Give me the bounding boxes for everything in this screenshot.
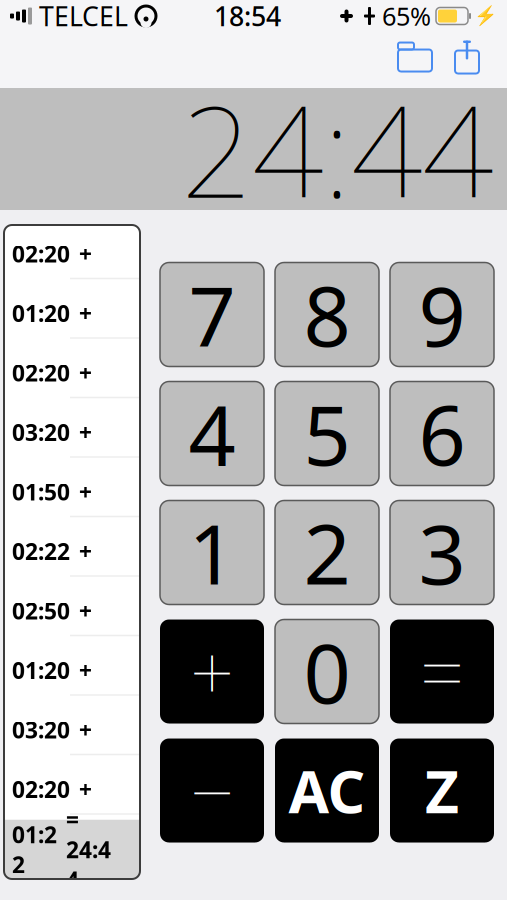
button[interactable]: 02:22 xyxy=(4,522,140,582)
button[interactable]: Z xyxy=(390,738,494,842)
button[interactable]: 0 xyxy=(275,619,379,723)
staticText: 03:20 xyxy=(12,417,70,447)
staticText: + xyxy=(79,596,92,626)
staticText: 03:20 xyxy=(12,715,70,745)
staticText: + xyxy=(79,536,92,566)
staticText: 01:20 xyxy=(12,655,70,685)
button[interactable]: 1 xyxy=(160,500,264,604)
staticText: AC xyxy=(288,751,365,829)
staticText: 24:44 xyxy=(181,66,493,232)
staticText: 02:20 xyxy=(12,239,70,269)
button[interactable]: − xyxy=(160,738,264,842)
staticText: 01:20 xyxy=(12,298,70,328)
staticText: 02:22 xyxy=(12,536,70,566)
button[interactable]: + xyxy=(160,619,264,723)
staticText: + xyxy=(79,358,92,388)
staticText: TELCEL xyxy=(39,0,128,34)
button[interactable]: 02:20 xyxy=(4,344,140,403)
button[interactable]: 2 xyxy=(275,500,379,604)
staticText: 65% xyxy=(382,0,431,33)
staticText: = xyxy=(420,620,464,723)
button[interactable]: 4 xyxy=(160,381,264,485)
staticText: − xyxy=(190,739,234,842)
button[interactable]: 01:22 xyxy=(4,820,140,879)
staticText: + xyxy=(79,239,92,269)
staticText: + xyxy=(79,774,92,804)
staticText: + xyxy=(79,715,92,745)
staticText: 3 xyxy=(418,498,465,607)
staticText: 0 xyxy=(303,617,350,726)
staticText: + xyxy=(79,298,92,328)
staticText: 6 xyxy=(418,379,465,488)
staticText: + xyxy=(79,655,92,685)
staticText: Z xyxy=(425,751,459,829)
button[interactable]: 03:20 xyxy=(4,403,140,463)
button[interactable]: 03:20 xyxy=(4,701,140,760)
button[interactable]: 02:50 xyxy=(4,582,140,641)
button[interactable]: 01:50 xyxy=(4,463,140,522)
staticText: 02:20 xyxy=(12,358,70,388)
button[interactable]: 3 xyxy=(390,500,494,604)
button[interactable]: 8 xyxy=(275,262,379,366)
button[interactable]: AC xyxy=(275,738,379,842)
button[interactable]: Open saved sessions xyxy=(389,32,441,82)
staticText: 5 xyxy=(303,379,350,488)
staticText: 8 xyxy=(303,260,350,369)
staticText: 01:22 xyxy=(12,819,57,880)
staticText: 7 xyxy=(188,260,235,369)
staticText: 02:50 xyxy=(12,596,70,626)
staticText: 18:54 xyxy=(214,0,281,34)
staticText: ⚡ xyxy=(474,5,497,27)
button[interactable]: 9 xyxy=(390,262,494,366)
staticText: 4 xyxy=(188,379,235,488)
staticText: = 24:44 xyxy=(66,804,111,895)
button[interactable]: 02:20 xyxy=(4,225,140,284)
button[interactable]: 01:20 xyxy=(4,284,140,344)
staticText: + xyxy=(79,417,92,447)
button[interactable]: Share xyxy=(441,32,493,82)
staticText: 2 xyxy=(303,498,350,607)
staticText: 9 xyxy=(418,260,465,369)
button[interactable]: = xyxy=(390,619,494,723)
button[interactable]: 7 xyxy=(160,262,264,366)
staticText: + xyxy=(79,477,92,507)
button[interactable]: 01:20 xyxy=(4,641,140,701)
staticText: 02:20 xyxy=(12,774,70,804)
staticText: + xyxy=(190,620,234,723)
staticText: 1 xyxy=(188,498,235,607)
button[interactable]: 5 xyxy=(275,381,379,485)
button[interactable]: 02:20 xyxy=(4,760,140,820)
staticText: 01:50 xyxy=(12,477,70,507)
button[interactable]: 6 xyxy=(390,381,494,485)
